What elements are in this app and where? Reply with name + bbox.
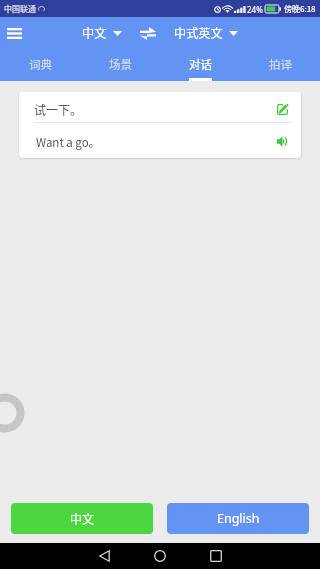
- button[interactable]: 试一下。: [19, 92, 301, 122]
- button[interactable]: Home: [132, 543, 188, 569]
- button[interactable]: 中文: [11, 503, 153, 534]
- staticText: 场景: [109, 56, 132, 73]
- button[interactable]: Swap languages: [137, 21, 159, 45]
- staticText: 中文: [82, 24, 107, 42]
- staticText: 试一下。: [34, 101, 83, 118]
- staticText: 24%: [247, 4, 263, 15]
- button[interactable]: English: [167, 503, 309, 534]
- staticText: 词典: [29, 56, 52, 73]
- button[interactable]: Want a go。: [19, 123, 301, 158]
- button[interactable]: 对话: [160, 48, 240, 81]
- button[interactable]: 场景: [80, 48, 160, 81]
- button[interactable]: 中式英文: [171, 21, 241, 45]
- button[interactable]: Recent apps: [188, 543, 244, 569]
- staticText: 傍晚6:18: [284, 3, 316, 15]
- button[interactable]: 中文: [79, 21, 125, 45]
- button[interactable]: Back: [76, 543, 132, 569]
- button[interactable]: Menu: [0, 19, 28, 47]
- staticText: English: [217, 510, 260, 527]
- other: Play audio: [277, 136, 288, 147]
- staticText: 中式英文: [174, 24, 223, 42]
- staticText: 拍译: [269, 56, 292, 73]
- staticText: 对话: [189, 56, 212, 73]
- staticText: 中文: [70, 510, 95, 527]
- staticText: Want a go。: [36, 134, 101, 151]
- staticText: 中国联通: [4, 3, 36, 15]
- button[interactable]: 拍译: [240, 48, 320, 81]
- button[interactable]: 词典: [0, 48, 80, 81]
- other: Edit: [277, 104, 288, 115]
